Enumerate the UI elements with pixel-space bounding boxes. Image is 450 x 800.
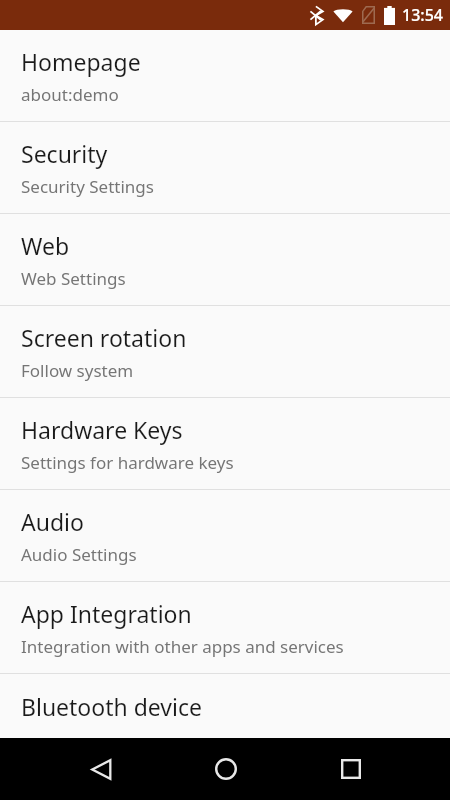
button[interactable]: App Integration — [0, 582, 450, 673]
staticText: about:demo — [21, 83, 119, 106]
button[interactable]: Hardware Keys — [0, 398, 450, 489]
button[interactable]: Recent apps — [312, 738, 390, 800]
staticText: Hardware Keys — [21, 414, 183, 445]
staticText: Web — [21, 230, 70, 261]
staticText: Follow system — [21, 359, 134, 382]
staticText: App Integration — [21, 598, 192, 629]
staticText: 13:54 — [402, 4, 443, 26]
button[interactable]: Home — [187, 738, 265, 800]
button[interactable]: Audio — [0, 490, 450, 581]
staticText: Homepage — [21, 46, 141, 77]
button[interactable]: Web — [0, 214, 450, 305]
button[interactable]: Back — [62, 738, 140, 800]
button[interactable]: Security — [0, 122, 450, 213]
staticText: Security — [21, 138, 108, 169]
button[interactable]: Bluetooth device — [0, 674, 450, 738]
staticText: Settings for hardware keys — [21, 451, 234, 474]
staticText: Integration with other apps and services — [21, 635, 344, 658]
staticText: Screen rotation — [21, 322, 187, 353]
staticText: Web Settings — [21, 267, 126, 290]
button[interactable]: Homepage — [0, 30, 450, 121]
staticText: Audio — [21, 506, 84, 537]
staticText: Bluetooth device — [21, 691, 202, 722]
staticText: Audio Settings — [21, 543, 137, 566]
button[interactable]: Screen rotation — [0, 306, 450, 397]
staticText: Security Settings — [21, 175, 154, 198]
